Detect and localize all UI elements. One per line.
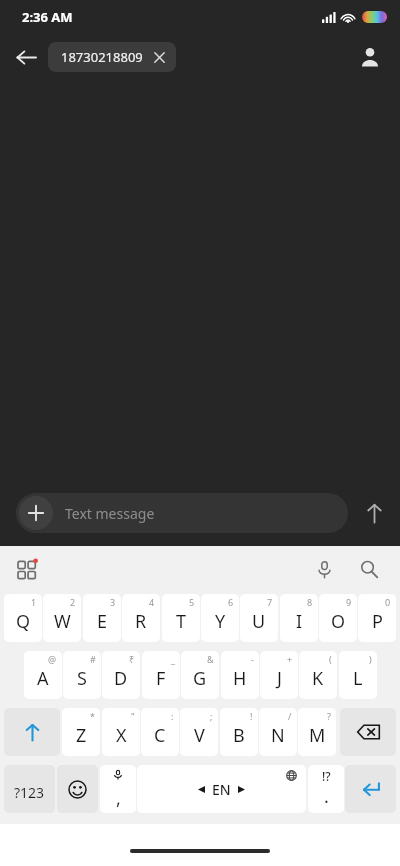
button[interactable]: Space, English <box>137 765 306 813</box>
button[interactable]: 18730218809 <box>48 42 176 72</box>
button[interactable]: 0 <box>358 594 396 642</box>
button[interactable]: _ <box>142 651 180 699</box>
button[interactable]: & <box>181 651 219 699</box>
staticText: G <box>193 666 207 691</box>
staticText: " <box>131 710 135 722</box>
button[interactable]: Shift <box>4 708 60 756</box>
staticText: U <box>252 609 266 634</box>
button[interactable]: @ <box>24 651 62 699</box>
button[interactable]: ; <box>180 708 218 756</box>
button[interactable]: 3 <box>83 594 121 642</box>
staticText: O <box>331 609 346 634</box>
staticText: 0 <box>385 596 391 608</box>
staticText: EN <box>212 780 231 799</box>
button[interactable]: ?123 <box>4 765 55 813</box>
staticText: _ <box>171 653 175 665</box>
staticText: 9 <box>346 596 352 608</box>
button[interactable]: Contact details <box>350 37 390 77</box>
staticText: # <box>90 653 96 665</box>
staticText: I <box>296 609 303 634</box>
staticText: 2:36 AM <box>22 8 73 26</box>
button[interactable]: 2 <box>43 594 81 642</box>
button[interactable]: * <box>62 708 100 756</box>
button[interactable]: Add attachment <box>16 493 348 533</box>
button[interactable]: 1 <box>4 594 42 642</box>
button[interactable]: / <box>259 708 297 756</box>
staticText: D <box>114 666 128 691</box>
button[interactable]: 6 <box>201 594 239 642</box>
button[interactable]: Send <box>348 488 400 538</box>
staticText: ) <box>369 653 372 665</box>
button[interactable]: Voice input <box>307 552 341 586</box>
staticText: A <box>37 666 49 691</box>
staticText: X <box>116 723 127 748</box>
staticText: - <box>251 653 254 665</box>
staticText: : <box>171 710 174 722</box>
button[interactable]: 8 <box>280 594 318 642</box>
button[interactable]: Add attachment <box>19 496 53 530</box>
staticText: J <box>277 666 282 691</box>
staticText: Y <box>215 609 226 634</box>
staticText: L <box>353 666 363 691</box>
button[interactable]: " <box>102 708 140 756</box>
staticText: P <box>372 609 383 634</box>
button[interactable]: 5 <box>162 594 200 642</box>
staticText: R <box>135 609 147 634</box>
button[interactable]: 9 <box>319 594 357 642</box>
staticText: @ <box>48 653 57 665</box>
staticText: V <box>194 723 205 748</box>
staticText: Z <box>76 723 87 748</box>
button[interactable]: Emoji <box>57 765 98 813</box>
staticText: C <box>154 723 166 748</box>
button[interactable]: + <box>260 651 298 699</box>
staticText: ( <box>329 653 332 665</box>
staticText: 18730218809 <box>61 48 143 66</box>
staticText: S <box>77 666 87 691</box>
staticText: ; <box>210 710 213 722</box>
button[interactable]: 4 <box>122 594 160 642</box>
staticText: W <box>54 609 71 634</box>
staticText: . <box>324 784 329 809</box>
button[interactable]: ( <box>299 651 337 699</box>
staticText: F <box>156 666 166 691</box>
staticText: N <box>271 723 285 748</box>
staticText: Text message <box>65 504 155 523</box>
staticText: 5 <box>189 596 195 608</box>
button[interactable]: Backspace <box>340 708 396 756</box>
staticText: ₹ <box>129 653 135 665</box>
button[interactable]: Back <box>6 37 46 77</box>
staticText: 4 <box>149 596 155 608</box>
staticText: ? <box>327 710 331 722</box>
staticText: 7 <box>267 596 273 608</box>
staticText: 1 <box>31 596 37 608</box>
staticText: 2 <box>70 596 76 608</box>
staticText: * <box>90 710 95 722</box>
staticText: , <box>116 786 121 811</box>
staticText: / <box>288 710 292 722</box>
staticText: T <box>176 609 187 634</box>
staticText: ?123 <box>14 783 45 802</box>
staticText: 3 <box>110 596 116 608</box>
button[interactable]: 7 <box>240 594 278 642</box>
button[interactable]: : <box>141 708 179 756</box>
staticText: K <box>312 666 324 691</box>
button[interactable]: ? <box>298 708 336 756</box>
staticText: !? <box>322 768 331 784</box>
button[interactable]: Keyboard menu <box>11 553 43 585</box>
button[interactable]: , <box>100 765 136 813</box>
button[interactable]: !? <box>308 765 344 813</box>
staticText: M <box>309 723 326 748</box>
button[interactable]: Search <box>352 552 386 586</box>
button[interactable]: ! <box>220 708 258 756</box>
staticText: 8 <box>307 596 313 608</box>
staticText: H <box>233 666 247 691</box>
staticText: ! <box>250 710 253 722</box>
staticText: Q <box>16 609 31 634</box>
button[interactable]: Enter <box>345 765 396 813</box>
staticText: & <box>207 653 214 665</box>
button[interactable]: ₹ <box>102 651 140 699</box>
staticText: + <box>287 653 293 665</box>
button[interactable]: # <box>63 651 101 699</box>
button[interactable]: - <box>221 651 259 699</box>
button[interactable]: ) <box>339 651 377 699</box>
